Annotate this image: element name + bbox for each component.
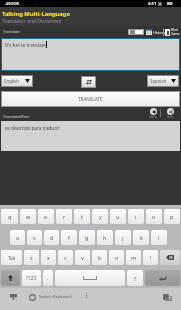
staticText: h xyxy=(103,234,107,241)
staticText: Share xyxy=(167,115,174,119)
staticText: ?123 xyxy=(26,275,37,282)
button[interactable]: More options xyxy=(86,293,87,298)
button[interactable]: x xyxy=(41,250,56,265)
staticText: es divertido para traducir xyxy=(5,125,60,131)
button[interactable]: n xyxy=(109,250,124,265)
staticText: Talking Multi-Language xyxy=(2,10,70,18)
staticText: j xyxy=(122,234,124,241)
staticText: English xyxy=(4,78,19,84)
staticText: c xyxy=(64,254,67,261)
staticText: i xyxy=(135,213,137,220)
button[interactable]: t xyxy=(74,209,90,224)
button[interactable]: Recent apps xyxy=(161,292,173,304)
staticText: g xyxy=(85,234,89,241)
button[interactable]: ?123 xyxy=(22,270,41,286)
staticText: v xyxy=(81,254,84,261)
staticText: e xyxy=(44,213,48,220)
staticText: m xyxy=(131,254,137,261)
button[interactable]: g xyxy=(79,230,95,245)
staticText: Spanish xyxy=(150,78,167,84)
button[interactable]: Enter xyxy=(145,270,180,286)
staticText: a xyxy=(16,234,20,241)
button[interactable]: h xyxy=(97,230,113,245)
staticText: Switch Keyboard xyxy=(39,294,72,300)
staticText: l xyxy=(158,234,160,241)
button[interactable]: i xyxy=(128,209,144,224)
button[interactable]: Switch Keyboard xyxy=(29,291,72,303)
staticText: , xyxy=(47,275,49,282)
staticText: 3:11 xyxy=(148,1,157,7)
button[interactable]: Hide keyboard xyxy=(7,291,20,303)
staticText: x xyxy=(47,254,50,261)
button[interactable]: w xyxy=(20,209,36,224)
staticText: q xyxy=(8,213,12,220)
button[interactable]: Backspace xyxy=(160,250,180,265)
staticText: n xyxy=(115,254,119,261)
staticText: f xyxy=(68,234,70,241)
staticText: o xyxy=(152,213,156,220)
staticText: u xyxy=(116,213,120,220)
button[interactable]: a xyxy=(10,230,25,245)
button[interactable]: Spanish xyxy=(148,76,178,86)
other: Shift xyxy=(8,275,13,281)
button[interactable]: b xyxy=(92,250,107,265)
button[interactable]: Share xyxy=(163,108,177,119)
button[interactable]: z xyxy=(24,250,39,265)
button[interactable]: ! xyxy=(143,250,158,265)
button[interactable]: Listen xyxy=(146,108,160,119)
other: Backspace xyxy=(166,255,174,260)
button[interactable]: c xyxy=(58,250,73,265)
staticText: Translate: xyxy=(3,29,21,34)
button[interactable]: d xyxy=(44,230,59,245)
button[interactable]: j xyxy=(115,230,131,245)
button[interactable]: r xyxy=(56,209,72,224)
button[interactable]: It's fun to translate xyxy=(2,39,179,70)
button[interactable]: s xyxy=(27,230,42,245)
button[interactable]: k xyxy=(133,230,149,245)
button[interactable]: ? xyxy=(127,270,143,286)
button[interactable]: es divertido para traducir xyxy=(1,121,180,151)
button[interactable]: m xyxy=(126,250,141,265)
staticText: NOOK xyxy=(7,1,20,6)
staticText: TRANSLATE xyxy=(78,96,103,102)
staticText: s xyxy=(33,234,36,241)
staticText: Translator and Dictionary xyxy=(2,18,62,25)
staticText: t xyxy=(81,213,83,220)
staticText: k xyxy=(140,234,143,241)
staticText: w xyxy=(26,213,31,220)
button[interactable]: Word xyxy=(165,28,180,36)
staticText: z xyxy=(30,254,33,261)
staticText: p xyxy=(170,213,174,220)
staticText: r xyxy=(63,213,66,220)
staticText: Word xyxy=(171,28,178,32)
staticText: It's fun to translate xyxy=(5,42,46,48)
button[interactable]: u xyxy=(110,209,126,224)
staticText: Listen xyxy=(149,115,157,119)
button[interactable]: l xyxy=(151,230,167,245)
staticText: d xyxy=(50,234,54,241)
staticText: Games xyxy=(171,32,180,36)
button[interactable] xyxy=(55,270,125,286)
staticText: ! xyxy=(150,254,152,261)
button[interactable]: e xyxy=(38,209,54,224)
button[interactable]: o xyxy=(146,209,162,224)
other: Enter xyxy=(158,275,167,282)
button[interactable]: Swap languages xyxy=(82,77,95,87)
button[interactable]: y xyxy=(92,209,108,224)
button[interactable]: p xyxy=(164,209,180,224)
button[interactable]: TRANSLATE xyxy=(2,92,179,106)
button[interactable]: q xyxy=(1,209,18,224)
button[interactable]: Shift xyxy=(1,270,20,286)
button[interactable]: f xyxy=(61,230,77,245)
staticText: ? xyxy=(134,275,137,282)
button[interactable]: Tab xyxy=(1,250,22,265)
button[interactable] xyxy=(129,30,143,34)
button[interactable]: v xyxy=(75,250,90,265)
button[interactable]: English xyxy=(2,76,32,86)
button[interactable]: History xyxy=(146,29,166,35)
staticText: y xyxy=(99,213,102,220)
staticText: TranslatedText xyxy=(3,114,29,119)
staticText: b xyxy=(98,254,102,261)
staticText: Tab xyxy=(8,255,16,261)
button[interactable]: , xyxy=(43,270,53,286)
